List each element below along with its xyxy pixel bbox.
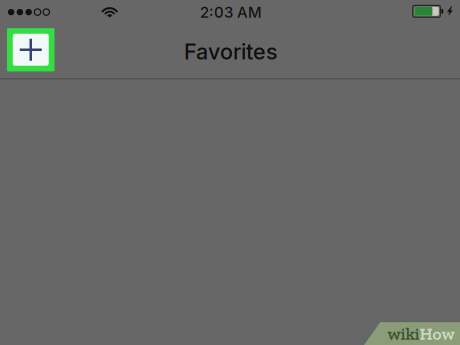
button[interactable]: Add favorite [7, 28, 54, 71]
staticText: Favorites [184, 38, 278, 65]
staticText: How [419, 323, 454, 344]
staticText: wiki [387, 323, 419, 344]
staticText: 2:03 AM [200, 3, 262, 21]
